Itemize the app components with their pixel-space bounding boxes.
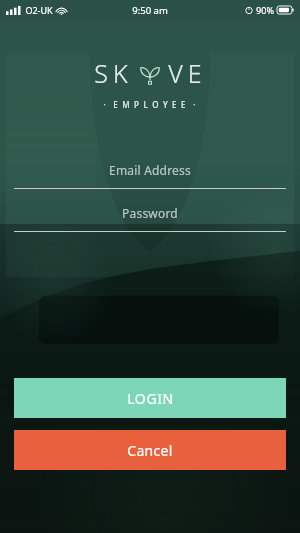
staticText: · E M P L O Y E E · — [103, 99, 197, 110]
staticText: Password — [122, 205, 178, 221]
staticText: Email Address — [109, 162, 191, 178]
button[interactable]: Email Address — [0, 162, 300, 189]
staticText: SK — [94, 56, 133, 90]
staticText: Cancel — [127, 441, 173, 460]
button[interactable]: Cancel — [14, 430, 286, 470]
staticText: 9:50 am — [132, 4, 168, 17]
button[interactable]: LOGIN — [14, 378, 286, 418]
staticText: 90% — [256, 4, 274, 16]
staticText: VE — [168, 56, 207, 90]
staticText: O2-UK — [25, 4, 53, 16]
button[interactable]: Password — [0, 205, 300, 232]
staticText: LOGIN — [127, 389, 174, 408]
